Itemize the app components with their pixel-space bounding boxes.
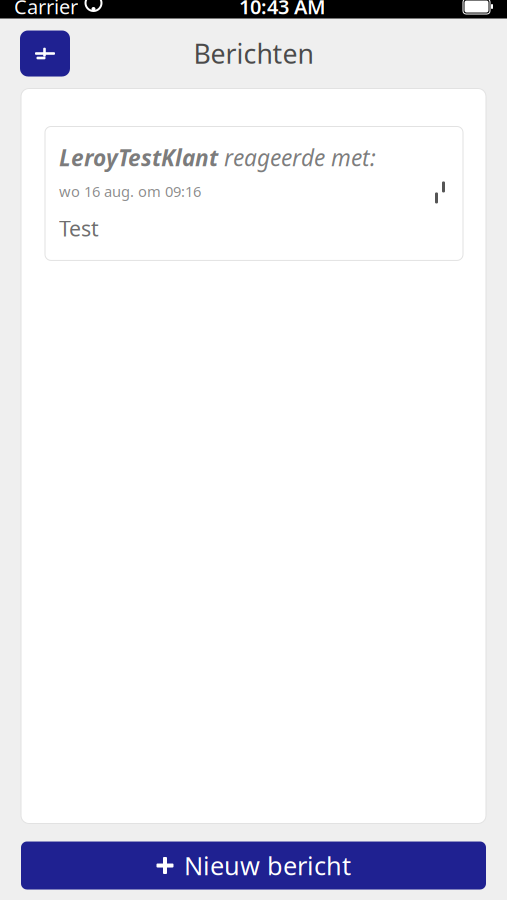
button[interactable]: LeroyTestKlant <box>45 126 463 260</box>
staticText: Nieuw bericht <box>184 849 351 882</box>
button[interactable]: Nieuw bericht <box>21 841 486 889</box>
staticText: Berichten <box>193 36 313 71</box>
staticText: LeroyTestKlant <box>59 142 218 173</box>
staticText: wo 16 aug. om 09:16 <box>59 182 201 201</box>
button[interactable]: Terug <box>20 30 70 76</box>
staticText: 10:43 AM <box>239 0 326 20</box>
staticText: reageerde met: <box>218 142 376 173</box>
staticText: Test <box>59 214 99 242</box>
staticText: Carrier <box>14 0 78 20</box>
